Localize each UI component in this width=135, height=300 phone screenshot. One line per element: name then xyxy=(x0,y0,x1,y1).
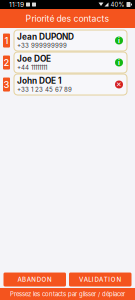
staticText: Joe DOE xyxy=(17,54,51,64)
staticText: Jean DUPOND xyxy=(17,32,74,42)
staticText: +33 1 23 45 67 89 xyxy=(17,86,72,93)
button[interactable]: 3 xyxy=(0,74,135,95)
staticText: ABANDON xyxy=(17,276,52,283)
staticText: 11:19 xyxy=(9,0,24,9)
staticText: Priorité des contacts xyxy=(25,13,109,24)
staticText: John DOE 1 xyxy=(17,76,62,86)
button[interactable]: ABANDON xyxy=(3,272,66,286)
staticText: Pressez les contacts par glisser / dépla… xyxy=(10,290,125,298)
staticText: i xyxy=(118,58,120,67)
staticText: 3 xyxy=(3,79,9,90)
button[interactable]: 1 xyxy=(0,30,135,51)
staticText: 40% xyxy=(110,1,124,8)
staticText: +33 999999999 xyxy=(17,42,67,49)
staticText: ✕ xyxy=(116,81,122,88)
staticText: 2 xyxy=(3,57,9,68)
staticText: i xyxy=(118,36,120,45)
staticText: 1 xyxy=(4,35,8,46)
staticText: +44 11111111 xyxy=(17,64,47,71)
button[interactable]: 2 xyxy=(0,52,135,73)
staticText: VALIDATION xyxy=(79,276,121,283)
button[interactable]: VALIDATION xyxy=(69,272,131,286)
